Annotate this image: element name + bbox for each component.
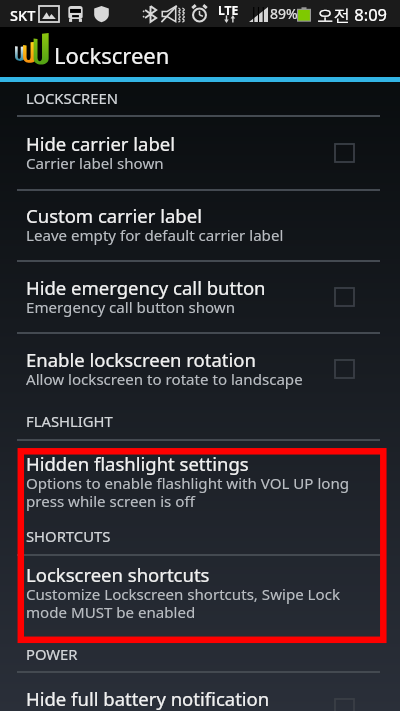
staticText: Carrier label shown [26,153,164,174]
staticText: Options to enable flashlight with VOL UP… [26,473,350,511]
staticText: SKT [10,5,36,25]
button[interactable]: Custom carrier label [0,203,400,258]
staticText: LOCKSCREEN [26,88,118,108]
staticText: Custom carrier label [26,203,202,228]
button[interactable]: Hide carrier label [0,131,400,186]
other: App icon [14,31,49,69]
staticText: SHORTCUTS [26,526,111,546]
button[interactable]: Hide full battery notification [0,686,400,711]
staticText: LTE [218,2,239,18]
staticText: FLASHLIGHT [26,411,113,431]
button[interactable]: Hide emergency call button [0,275,400,330]
button[interactable]: Lockscreen shortcuts [0,562,400,634]
staticText: Hide emergency call button [26,275,266,300]
staticText: 89% [270,4,298,23]
staticText: Allow lockscreen to rotate to landscape [26,369,303,390]
staticText: 오전 8:09 [317,3,388,26]
staticText: Customize Lockscreen shortcuts, Swipe Lo… [26,584,340,622]
staticText: Leave empty for default carrier label [26,225,284,246]
staticText: Lockscreen [54,40,170,70]
button[interactable]: Enable lockscreen rotation [0,347,400,402]
staticText: Emergency call button shown [26,297,235,318]
staticText: Hidden flashlight settings [26,451,249,476]
staticText: Hide full battery notification [26,686,270,711]
button[interactable]: Hidden flashlight settings [0,451,400,523]
staticText: POWER [26,644,78,664]
staticText: Enable lockscreen rotation [26,347,256,372]
staticText: Lockscreen shortcuts [26,562,210,587]
staticText: Hide carrier label [26,131,176,156]
